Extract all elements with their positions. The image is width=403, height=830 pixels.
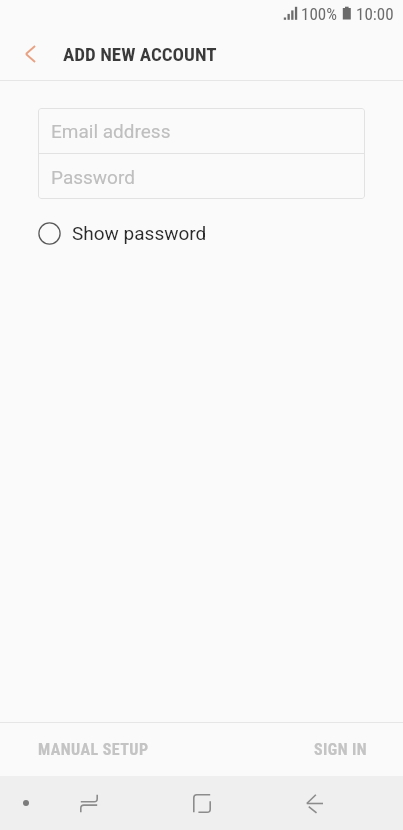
button[interactable]: Password bbox=[38, 154, 365, 199]
button[interactable]: Navigate up bbox=[0, 27, 60, 80]
staticText: MANUAL SETUP bbox=[38, 740, 149, 759]
button[interactable]: Home bbox=[145, 776, 258, 830]
staticText: ADD NEW ACCOUNT bbox=[63, 43, 217, 65]
staticText: 100% bbox=[301, 4, 337, 24]
staticText: SIGN IN bbox=[314, 740, 368, 759]
button[interactable]: Show password bbox=[38, 212, 365, 254]
staticText: Password bbox=[51, 166, 135, 188]
staticText: Email address bbox=[51, 120, 171, 142]
button[interactable]: SIGN IN bbox=[201, 723, 403, 776]
button[interactable]: Recent apps bbox=[32, 776, 145, 830]
button[interactable]: Email address bbox=[38, 108, 365, 153]
button[interactable]: MANUAL SETUP bbox=[0, 723, 201, 776]
button[interactable]: Back bbox=[258, 776, 371, 830]
button[interactable]: Hide keyboard bbox=[0, 776, 52, 830]
staticText: Show password bbox=[72, 222, 207, 244]
staticText: 10:00 bbox=[356, 4, 394, 24]
